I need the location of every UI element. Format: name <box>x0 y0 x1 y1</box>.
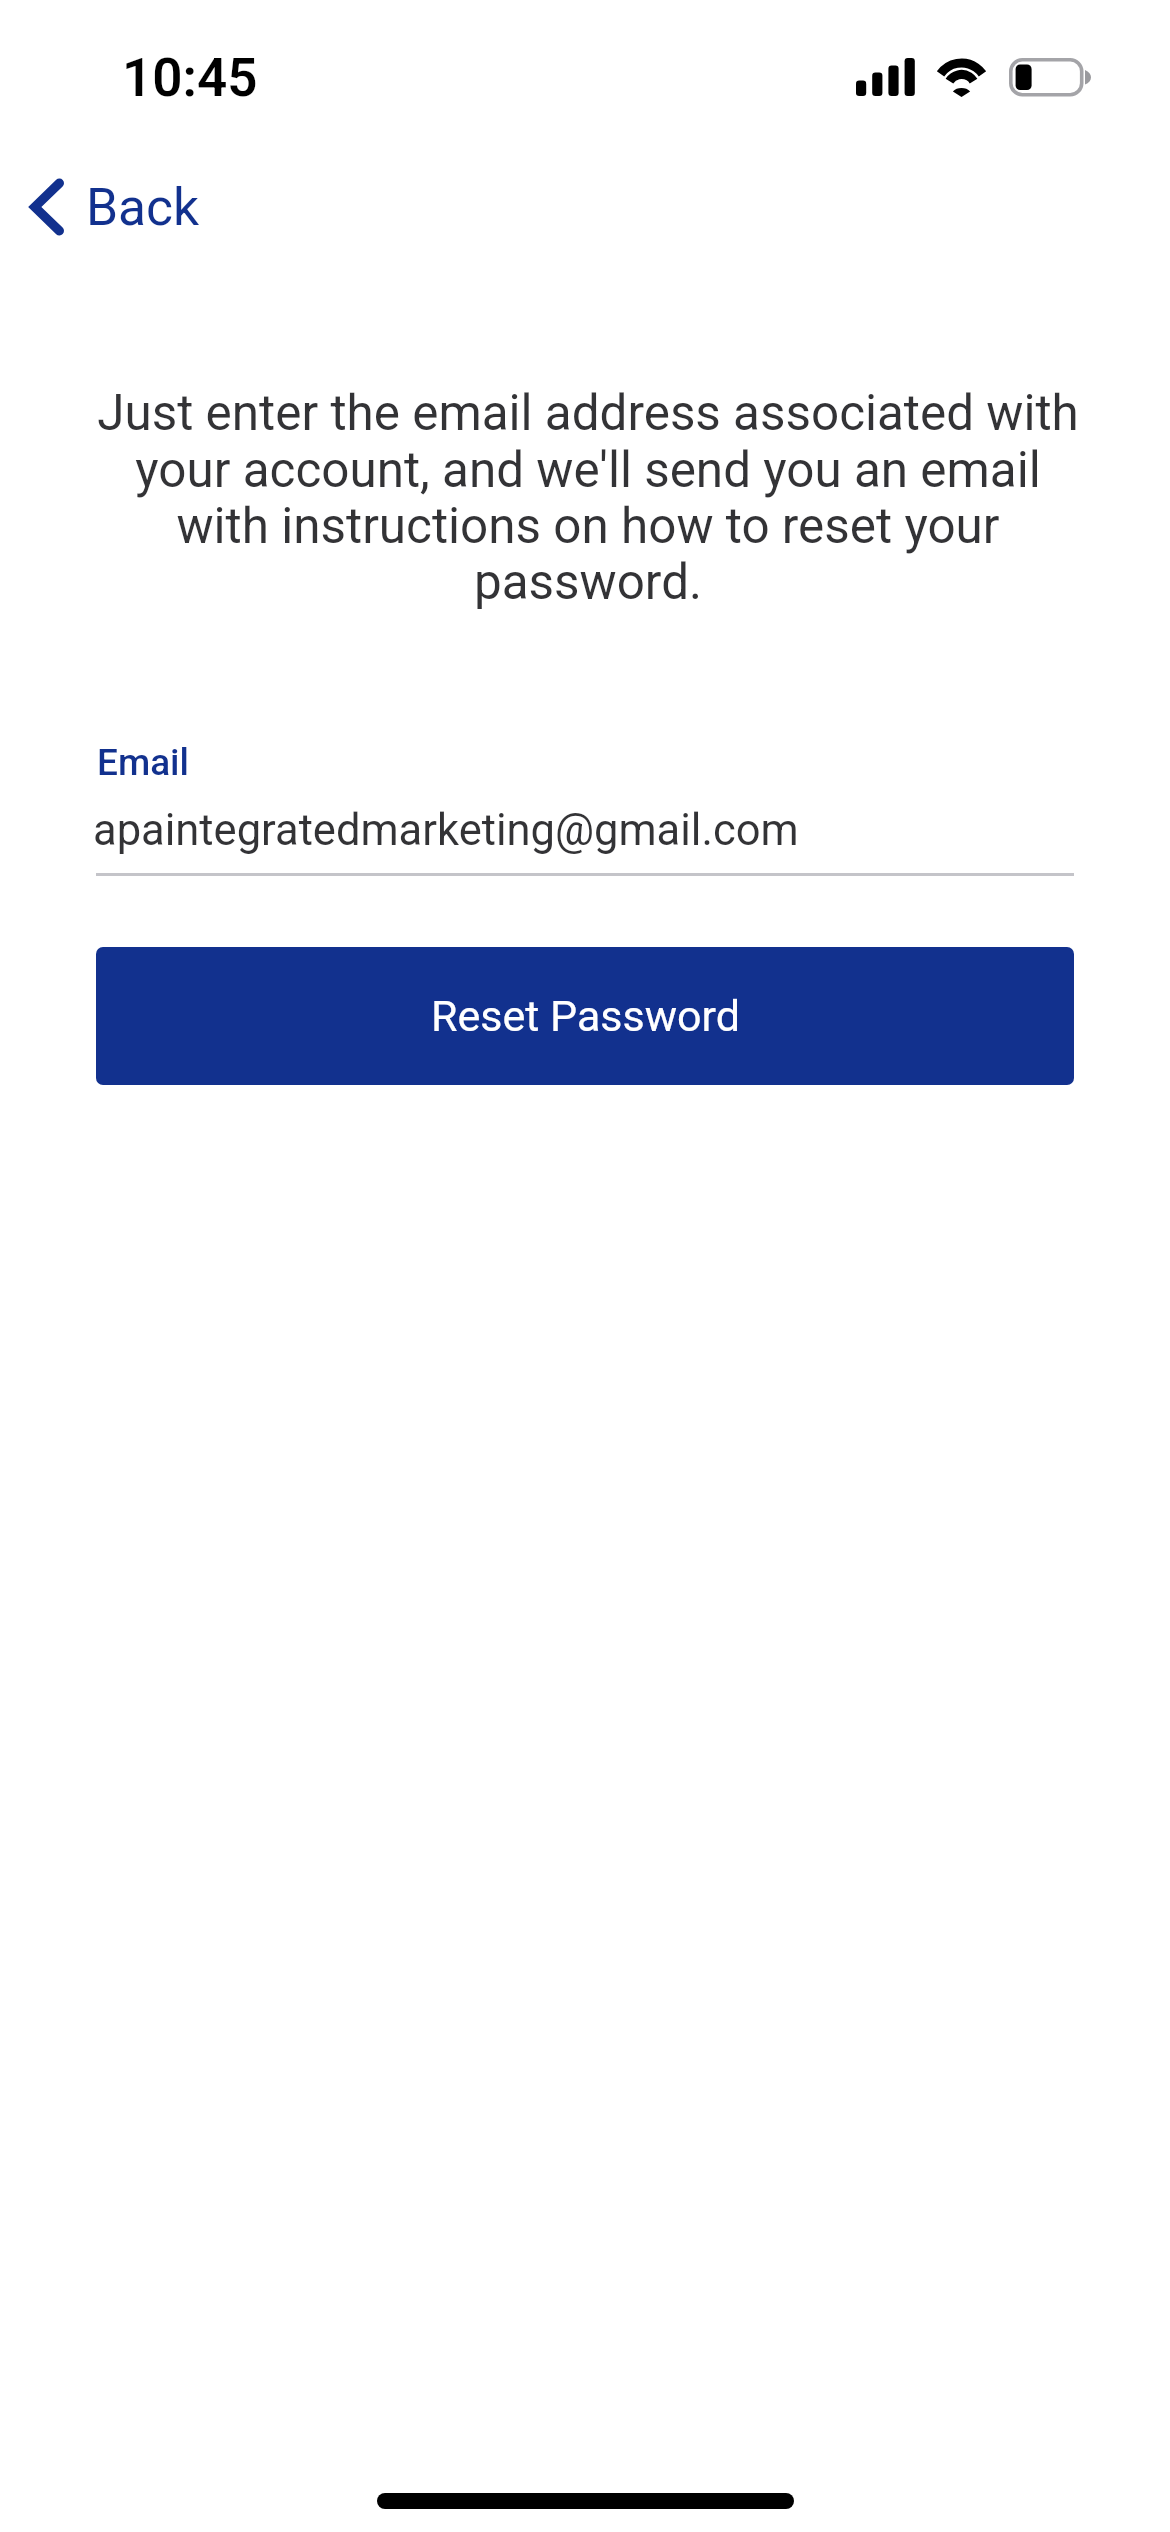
button[interactable]: Back <box>16 169 214 245</box>
staticText: Back <box>86 177 200 237</box>
other: Battery <box>1009 58 1101 100</box>
staticText: 10:45 <box>122 47 258 109</box>
staticText: Email <box>97 741 189 784</box>
other: Cellular signal <box>856 58 914 96</box>
button[interactable]: Reset Password <box>96 947 1074 1085</box>
staticText: apaintegratedmarketing@gmail.com <box>93 805 799 856</box>
staticText: Just enter the email address associated … <box>88 384 1088 611</box>
staticText: Reset Password <box>431 991 740 1041</box>
button[interactable]: Email <box>96 735 1074 876</box>
other: Wi-Fi <box>936 58 990 100</box>
other: Back <box>30 178 64 236</box>
